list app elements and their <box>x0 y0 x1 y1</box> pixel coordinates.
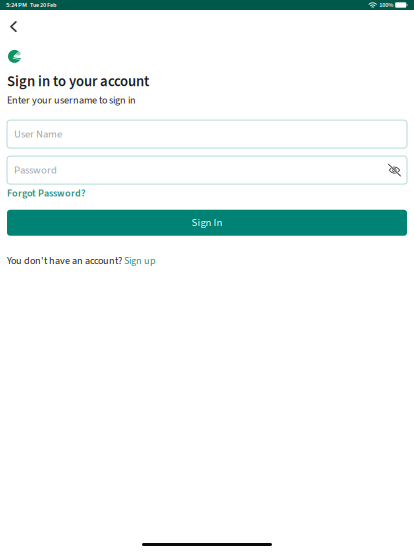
staticText: Password <box>14 162 57 178</box>
staticText: 100% <box>379 1 393 9</box>
button[interactable]: Forgot Password? <box>0 184 91 202</box>
staticText: User Name <box>14 126 62 142</box>
staticText: You don't have an account? <box>7 253 124 268</box>
staticText: 5:24 PM <box>6 0 27 10</box>
button[interactable]: Back <box>0 10 26 37</box>
staticText: Enter your username to sign in <box>7 93 136 107</box>
staticText: Tue 20 Feb <box>30 1 56 9</box>
staticText: Forgot Password? <box>7 186 85 200</box>
staticText: Sign in to your account <box>7 71 149 92</box>
button[interactable]: Sign up <box>124 253 156 268</box>
staticText: Sign up <box>124 253 156 268</box>
staticText: Sign In <box>191 215 222 230</box>
button[interactable]: Sign In <box>7 210 407 236</box>
